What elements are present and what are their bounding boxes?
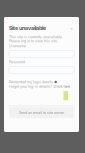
staticText: × xyxy=(70,25,73,31)
staticText: Site unavailable xyxy=(9,25,46,31)
staticText: Please log in to view this site. xyxy=(9,39,58,43)
button[interactable]: Send an email to site owner xyxy=(9,107,74,118)
staticText: Remember my login details xyxy=(9,80,53,84)
staticText: This site is currently unavailable xyxy=(9,35,62,39)
staticText: Send an email to site owner xyxy=(19,111,64,115)
staticText: Password xyxy=(9,60,25,64)
button[interactable]: Remember my login details xyxy=(9,80,74,83)
button[interactable]: Close xyxy=(69,25,74,30)
staticText: Username xyxy=(9,44,26,48)
staticText: Click here xyxy=(53,84,70,89)
button[interactable]: Click here xyxy=(53,84,70,89)
staticText: Forgot your log-in details? xyxy=(9,84,52,89)
